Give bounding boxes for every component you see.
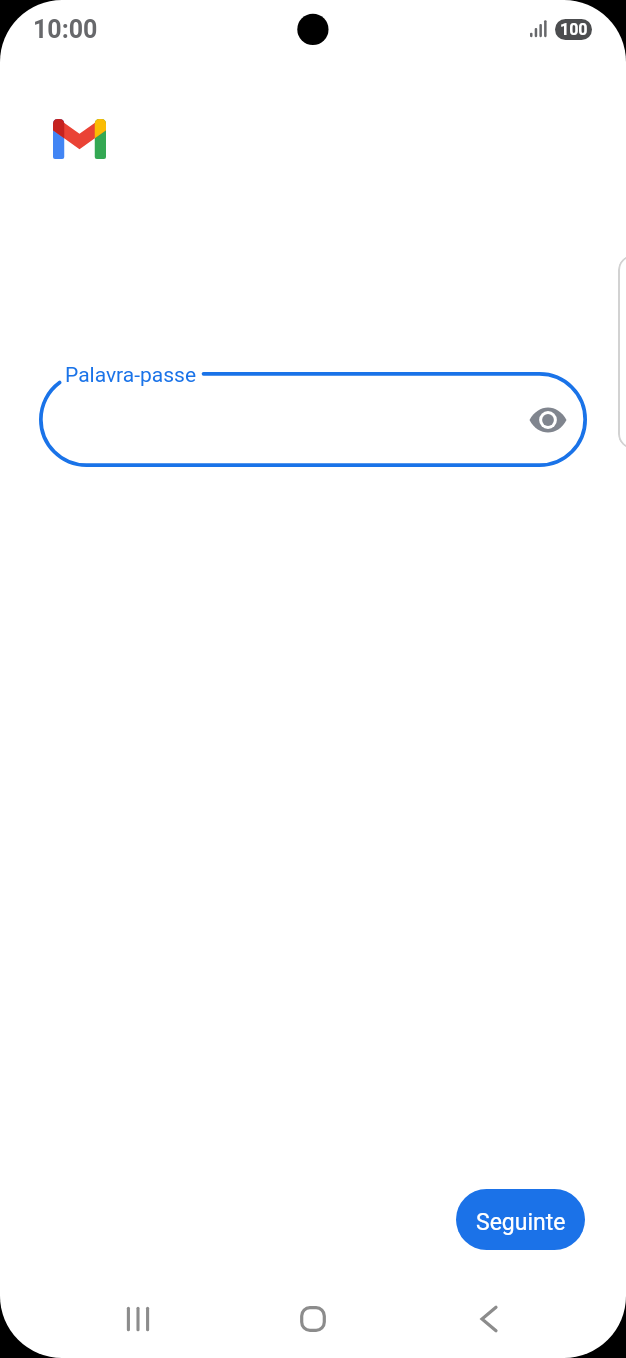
button[interactable]: Seguinte xyxy=(456,1189,585,1250)
staticText: 10:00 xyxy=(33,15,98,44)
button[interactable]: Aplicações recentes xyxy=(98,1279,178,1358)
staticText: 100 xyxy=(560,20,588,39)
button[interactable]: Anterior xyxy=(449,1279,529,1358)
button[interactable]: Início xyxy=(273,1279,353,1358)
button[interactable]: Mostrar palavra-passe xyxy=(523,395,572,444)
staticText: Palavra-passe xyxy=(65,363,197,388)
staticText: Seguinte xyxy=(476,1209,566,1236)
button[interactable]: Painel lateral xyxy=(618,255,626,449)
